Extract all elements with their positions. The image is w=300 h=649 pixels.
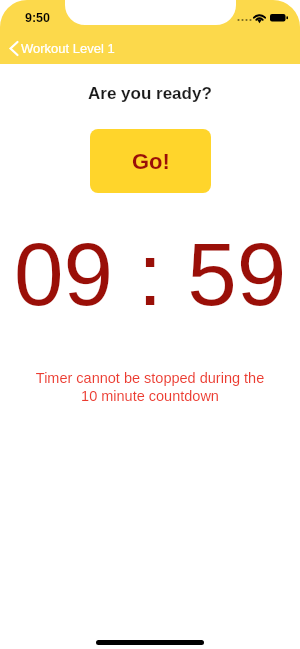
staticText: 9:50 bbox=[25, 11, 51, 25]
staticText: 09 : 59 bbox=[14, 224, 287, 323]
other: Back bbox=[9, 41, 18, 56]
staticText: Are you ready? bbox=[88, 84, 212, 103]
staticText: Go! bbox=[132, 149, 170, 174]
staticText: Workout Level 1 bbox=[21, 41, 115, 56]
staticText: Timer cannot be stopped during the 10 mi… bbox=[20, 370, 280, 404]
button[interactable]: Back bbox=[0, 39, 123, 58]
button[interactable]: Go! bbox=[90, 129, 211, 193]
